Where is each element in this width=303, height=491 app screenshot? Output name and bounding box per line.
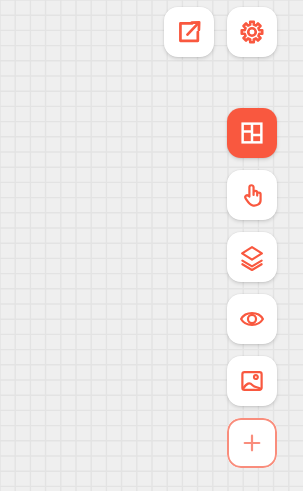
button[interactable]: Share <box>164 7 214 57</box>
button[interactable]: Settings <box>227 7 277 57</box>
button[interactable]: Layers <box>227 232 277 282</box>
button[interactable]: Add <box>227 418 277 468</box>
button[interactable]: Layout <box>227 108 277 158</box>
button[interactable]: Image <box>227 356 277 406</box>
button[interactable]: Visibility <box>227 294 277 344</box>
button[interactable]: Select tool <box>227 170 277 220</box>
